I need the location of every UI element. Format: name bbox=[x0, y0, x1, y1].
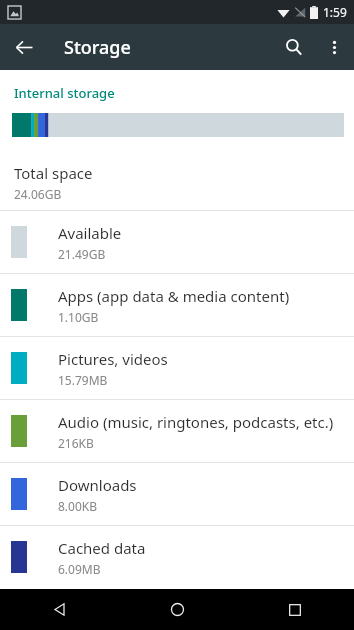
staticText: 21.49GB bbox=[58, 246, 106, 262]
staticText: 6.09MB bbox=[58, 561, 101, 577]
staticText: Pictures, videos bbox=[58, 349, 168, 369]
staticText: Cached data bbox=[58, 538, 146, 558]
button[interactable]: Downloads bbox=[0, 463, 354, 525]
button[interactable]: Back bbox=[6, 29, 42, 65]
button[interactable]: Back bbox=[0, 589, 118, 630]
staticText: Downloads bbox=[58, 475, 137, 495]
staticText: Total space bbox=[14, 163, 93, 183]
button[interactable]: Apps (app data & media content) bbox=[0, 274, 354, 336]
staticText: Audio (music, ringtones, podcasts, etc.) bbox=[58, 412, 334, 432]
button[interactable]: Home bbox=[118, 589, 236, 630]
button[interactable]: Recent apps bbox=[236, 589, 354, 630]
staticText: 8.00KB bbox=[58, 498, 98, 514]
staticText: Internal storage bbox=[14, 84, 115, 102]
button[interactable]: Available bbox=[0, 211, 354, 273]
staticText: 216KB bbox=[58, 435, 94, 451]
staticText: Available bbox=[58, 223, 122, 243]
staticText: 1:59 bbox=[323, 4, 347, 20]
button[interactable]: More options bbox=[314, 27, 354, 67]
button[interactable]: Pictures, videos bbox=[0, 337, 354, 399]
button[interactable]: Audio (music, ringtones, podcasts, etc.) bbox=[0, 400, 354, 462]
button[interactable]: Search bbox=[274, 27, 314, 67]
button[interactable]: Cached data bbox=[0, 526, 354, 588]
staticText: 24.06GB bbox=[14, 186, 62, 202]
staticText: 15.79MB bbox=[58, 372, 108, 388]
button[interactable]: Total space bbox=[0, 155, 354, 210]
staticText: 1.10GB bbox=[58, 309, 99, 325]
staticText: Storage bbox=[64, 35, 131, 60]
staticText: Apps (app data & media content) bbox=[58, 286, 290, 306]
